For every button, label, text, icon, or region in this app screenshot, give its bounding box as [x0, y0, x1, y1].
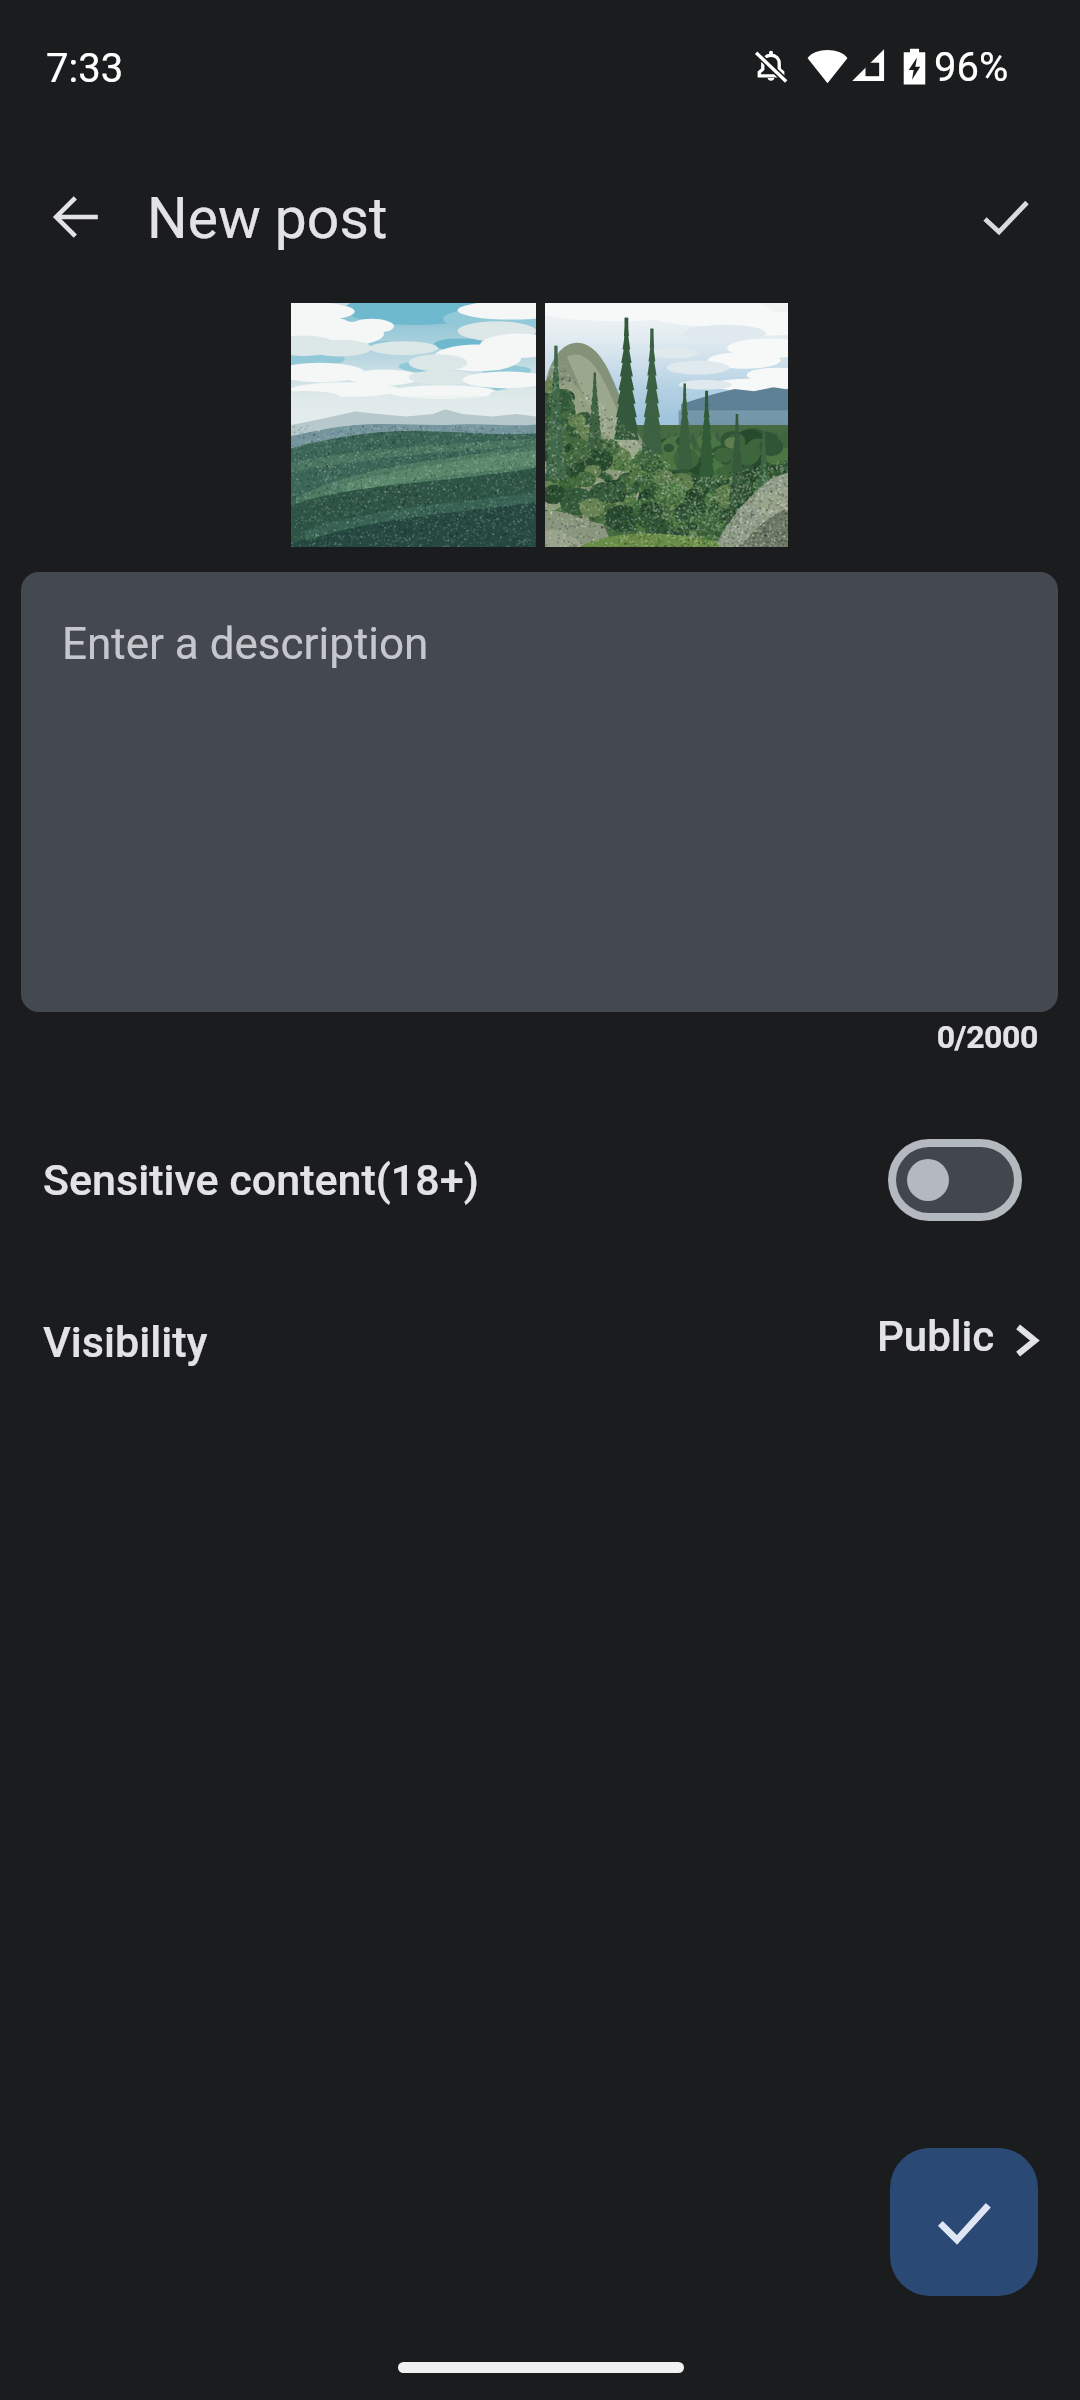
staticText: Sensitive content(18+) — [43, 1155, 479, 1205]
staticText: 7:33 — [46, 45, 124, 92]
button[interactable]: Back — [27, 167, 127, 267]
button[interactable]: Enter a description — [21, 572, 1058, 1012]
button[interactable]: Sensitive content toggle, off — [888, 1139, 1022, 1221]
button[interactable]: Sensitive content(18+) — [0, 1105, 1080, 1255]
staticText: Enter a description — [62, 618, 429, 670]
staticText: Visibility — [43, 1317, 208, 1367]
button[interactable]: Post — [890, 2148, 1038, 2296]
button[interactable]: Selected photo 2 — [545, 303, 788, 547]
staticText: New post — [147, 185, 388, 252]
staticText: 96% — [934, 44, 1009, 91]
staticText: 0/2000 — [0, 1018, 1038, 1056]
staticText: Public — [877, 1312, 995, 1361]
button[interactable]: Visibility — [0, 1267, 1080, 1417]
button[interactable]: Selected photo 1 — [291, 303, 536, 547]
button[interactable]: Done — [956, 167, 1056, 267]
